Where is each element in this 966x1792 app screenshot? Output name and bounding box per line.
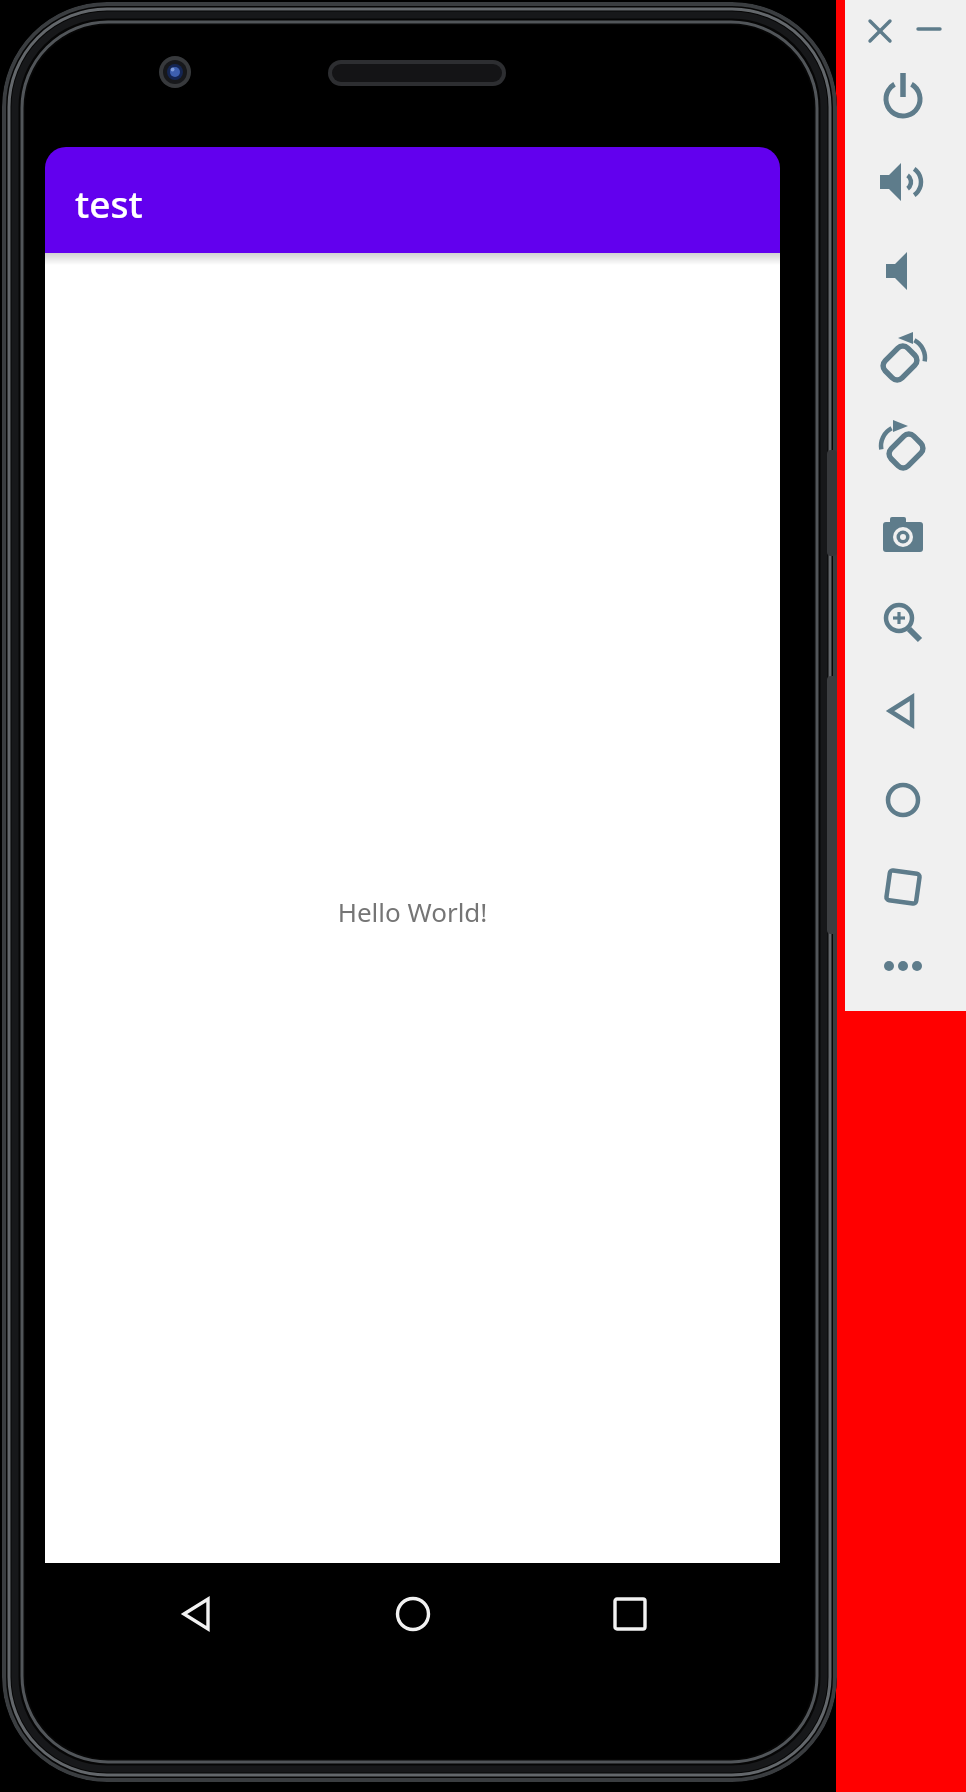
button[interactable] — [911, 13, 947, 49]
button[interactable] — [395, 1596, 431, 1632]
button[interactable] — [876, 939, 930, 993]
button[interactable] — [876, 596, 930, 650]
staticText: test — [75, 178, 143, 228]
button[interactable] — [876, 684, 930, 738]
button[interactable] — [862, 13, 898, 49]
button[interactable] — [876, 420, 930, 474]
button[interactable] — [876, 332, 930, 386]
button[interactable] — [876, 244, 930, 298]
staticText: Hello World! — [45, 894, 780, 929]
button[interactable] — [876, 70, 930, 124]
button[interactable] — [180, 1596, 216, 1632]
button[interactable] — [876, 155, 930, 209]
button[interactable] — [612, 1596, 648, 1632]
button[interactable] — [876, 773, 930, 827]
button[interactable] — [876, 508, 930, 562]
button[interactable]: test — [45, 147, 780, 253]
button[interactable] — [876, 860, 930, 914]
